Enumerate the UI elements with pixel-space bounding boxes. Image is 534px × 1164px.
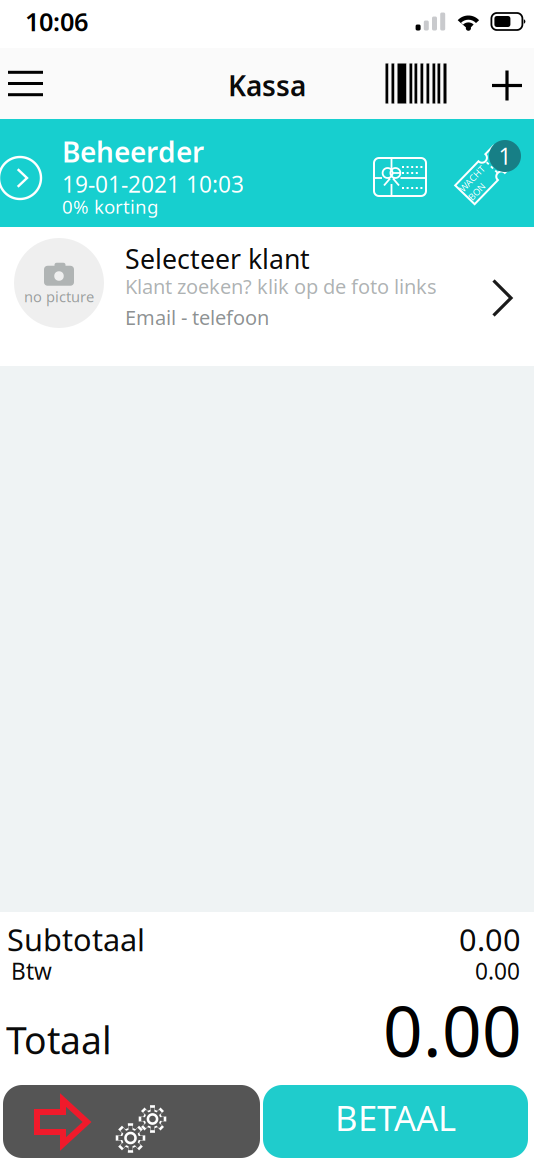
button[interactable]: Cadeaukaart [364, 148, 436, 206]
staticText: BETAAL [335, 1094, 456, 1140]
staticText: Kassa [228, 67, 306, 104]
button[interactable]: Scan barcode [381, 48, 451, 119]
button[interactable]: BETAAL [263, 1085, 528, 1158]
staticText: 0% korting [62, 194, 158, 219]
staticText: Btw [11, 956, 52, 986]
staticText: Selecteer klant [125, 241, 310, 276]
staticText: 19-01-2021 10:03 [62, 169, 244, 199]
button[interactable]: Wachtbon [448, 144, 520, 206]
staticText: WACHT BON [457, 163, 489, 187]
staticText: Klant zoeken? klik op de foto links [125, 273, 437, 300]
staticText: Totaal [6, 1015, 112, 1065]
staticText: 0.00 [459, 919, 521, 960]
staticText: no picture [24, 287, 94, 306]
staticText: Email - telefoon [125, 304, 269, 331]
button[interactable]: Menu [0, 48, 55, 119]
staticText: 0.00 [475, 956, 520, 986]
staticText: 1 [498, 141, 511, 171]
staticText: 10:06 [25, 5, 88, 38]
staticText: Subtotaal [7, 919, 145, 960]
staticText: Beheerder [62, 133, 204, 170]
staticText: 0.00 [383, 984, 522, 1076]
button[interactable]: Instellingen [3, 1085, 260, 1158]
button[interactable]: Nieuw [475, 50, 534, 121]
button[interactable]: no picture [0, 227, 534, 366]
